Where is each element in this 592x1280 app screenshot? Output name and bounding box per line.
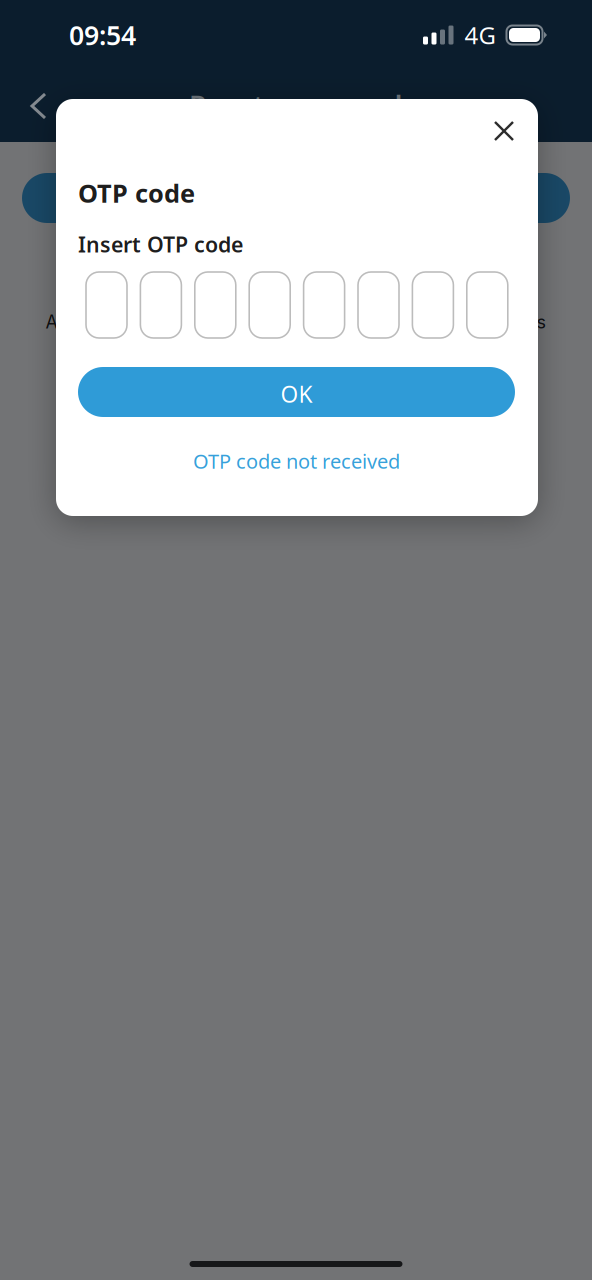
button[interactable]: OK — [78, 367, 515, 417]
staticText: Reset password — [189, 87, 403, 125]
staticText: OTP code — [78, 176, 195, 210]
button[interactable]: Close — [480, 107, 528, 155]
button[interactable]: Send code — [22, 173, 570, 223]
button[interactable]: OTP code not received — [56, 443, 537, 479]
staticText: 09:54 — [69, 17, 136, 53]
staticText: OK — [280, 379, 312, 409]
button[interactable]: Back — [0, 78, 65, 134]
staticText: An SMS with a verification code was sent… — [45, 311, 546, 333]
staticText: 4G — [464, 19, 495, 51]
staticText: OTP code not received — [193, 448, 400, 474]
staticText: Insert OTP code — [78, 230, 243, 258]
